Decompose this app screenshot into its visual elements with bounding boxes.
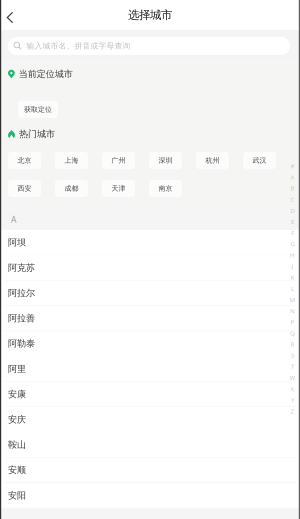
staticText: L bbox=[291, 284, 294, 293]
button[interactable]: 南京 bbox=[149, 180, 182, 197]
staticText: 安阳 bbox=[8, 490, 26, 501]
staticText: 成都 bbox=[64, 184, 78, 193]
staticText: Y bbox=[291, 396, 294, 404]
staticText: 阿坝 bbox=[8, 237, 26, 248]
button[interactable]: 安庆 bbox=[0, 407, 300, 432]
button[interactable]: 输入城市名、拼音或字母查询 bbox=[8, 37, 290, 55]
staticText: Z bbox=[290, 407, 294, 415]
button[interactable]: 阿拉尔 bbox=[0, 281, 300, 306]
staticText: M bbox=[289, 295, 295, 304]
button[interactable]: 阿勒泰 bbox=[0, 331, 300, 356]
button[interactable]: 天津 bbox=[102, 180, 135, 197]
staticText: 阿拉尔 bbox=[8, 287, 35, 299]
button[interactable]: 阿坝 bbox=[0, 230, 300, 255]
staticText: P bbox=[290, 318, 294, 326]
button[interactable]: 广州 bbox=[102, 152, 135, 169]
staticText: Q bbox=[290, 329, 295, 337]
staticText: W bbox=[289, 373, 295, 382]
staticText: 阿勒泰 bbox=[8, 338, 35, 349]
staticText: B bbox=[290, 184, 294, 192]
staticText: 西安 bbox=[17, 184, 31, 193]
staticText: 阿拉善 bbox=[8, 313, 35, 324]
staticText: 安康 bbox=[8, 388, 26, 400]
button[interactable]: 阿拉善 bbox=[0, 306, 300, 331]
staticText: 鞍山 bbox=[8, 439, 26, 450]
staticText: A bbox=[290, 173, 294, 181]
staticText: J bbox=[291, 262, 293, 270]
button[interactable]: 阿里 bbox=[0, 356, 300, 382]
staticText: # bbox=[290, 162, 294, 170]
button[interactable]: 上海 bbox=[55, 152, 88, 169]
staticText: A bbox=[11, 214, 16, 225]
staticText: G bbox=[290, 240, 294, 248]
staticText: 天津 bbox=[111, 184, 125, 193]
staticText: E bbox=[291, 217, 294, 226]
staticText: S bbox=[291, 351, 294, 360]
staticText: 安庆 bbox=[8, 414, 26, 425]
staticText: H bbox=[290, 251, 295, 259]
staticText: F bbox=[291, 229, 294, 237]
button[interactable]: 返回 bbox=[0, 0, 26, 30]
staticText: 南京 bbox=[158, 184, 172, 193]
staticText: T bbox=[291, 362, 294, 371]
staticText: R bbox=[290, 340, 294, 348]
button[interactable]: 西安 bbox=[8, 180, 41, 197]
staticText: 上海 bbox=[64, 156, 78, 165]
staticText: 北京 bbox=[17, 156, 31, 165]
staticText: K bbox=[290, 273, 294, 282]
button[interactable]: 成都 bbox=[55, 180, 88, 197]
staticText: C bbox=[290, 195, 294, 204]
staticText: 武汉 bbox=[252, 156, 266, 165]
button[interactable]: 武汉 bbox=[243, 152, 276, 169]
button[interactable]: 安顺 bbox=[0, 458, 300, 483]
button[interactable]: 深圳 bbox=[149, 152, 182, 169]
button[interactable]: 北京 bbox=[8, 152, 41, 169]
staticText: 杭州 bbox=[205, 156, 219, 165]
staticText: 阿克苏 bbox=[8, 262, 35, 273]
staticText: X bbox=[290, 385, 294, 393]
staticText: 广州 bbox=[111, 156, 125, 165]
staticText: 输入城市名、拼音或字母查询 bbox=[27, 41, 131, 51]
button[interactable]: 鞍山 bbox=[0, 432, 300, 458]
staticText: 热门城市 bbox=[19, 128, 55, 140]
staticText: 获取定位 bbox=[24, 105, 52, 114]
button[interactable]: 安阳 bbox=[0, 483, 300, 508]
button[interactable]: 杭州 bbox=[196, 152, 229, 169]
button[interactable]: 安康 bbox=[0, 382, 300, 407]
staticText: 选择城市 bbox=[128, 8, 172, 22]
staticText: 安顺 bbox=[8, 464, 26, 476]
staticText: 深圳 bbox=[158, 156, 172, 165]
button[interactable]: 阿克苏 bbox=[0, 255, 300, 281]
staticText: 阿里 bbox=[8, 363, 26, 375]
button[interactable]: 获取定位 bbox=[18, 101, 58, 118]
staticText: 当前定位城市 bbox=[19, 68, 73, 80]
staticText: N bbox=[290, 307, 295, 315]
staticText: D bbox=[290, 206, 294, 215]
